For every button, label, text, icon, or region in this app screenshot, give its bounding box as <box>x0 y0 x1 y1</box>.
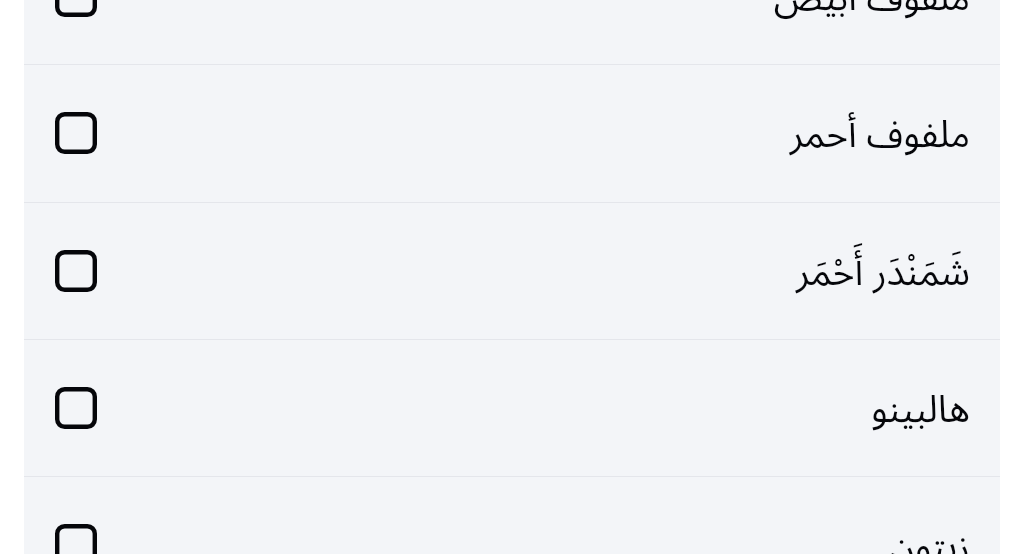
button[interactable]: Check off هالبينو <box>24 339 1000 476</box>
staticText: زيتون <box>889 508 970 554</box>
button[interactable]: Check off ملفوف أحمر <box>53 110 99 156</box>
staticText: ملفوف أبيض <box>773 0 970 38</box>
button[interactable]: Check off شَمَنْدَر أَحْمَر <box>24 202 1000 339</box>
button[interactable]: Check off ملفوف أحمر <box>24 64 1000 201</box>
button[interactable]: Check off ملفوف أبيض <box>24 0 1000 64</box>
button[interactable]: Check off ملفوف أبيض <box>53 0 99 19</box>
staticText: هالبينو <box>870 371 970 450</box>
staticText: شَمَنْدَر أَحْمَر <box>796 234 970 313</box>
button[interactable]: Check off شَمَنْدَر أَحْمَر <box>53 248 99 294</box>
button[interactable]: Check off زيتون <box>53 522 99 554</box>
staticText: ملفوف أحمر <box>789 96 970 175</box>
button[interactable]: Check off زيتون <box>24 476 1000 554</box>
button[interactable]: Check off هالبينو <box>53 385 99 431</box>
